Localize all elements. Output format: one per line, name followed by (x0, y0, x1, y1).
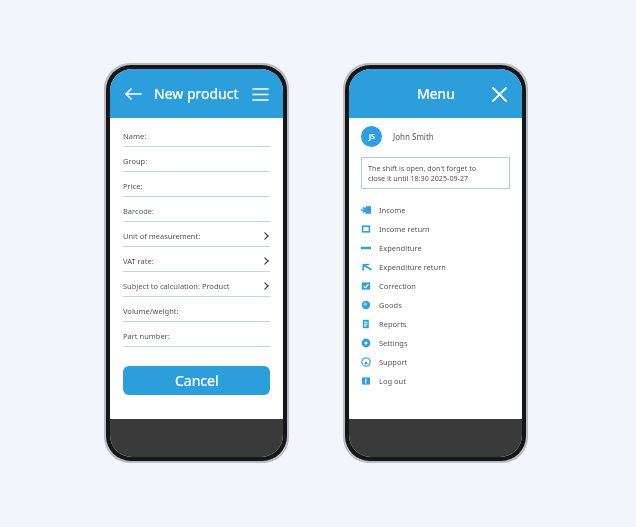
staticText: JS (369, 132, 375, 142)
button[interactable]: Reports (361, 314, 510, 333)
staticText: Menu (417, 84, 455, 103)
staticText: Income (379, 205, 406, 215)
staticText: Correction (379, 281, 416, 291)
button[interactable]: Back (122, 83, 144, 105)
staticText: Name: (123, 131, 270, 141)
staticText: Support (379, 357, 408, 367)
button[interactable]: Support (361, 352, 510, 371)
button[interactable]: Menu (249, 83, 271, 105)
button[interactable]: Expenditure return (361, 257, 510, 276)
button[interactable]: VAT rate: (123, 251, 270, 276)
button[interactable]: Close (488, 83, 510, 105)
staticText: Part number: (123, 331, 270, 341)
staticText: Log out (379, 376, 406, 386)
staticText: Price: (123, 181, 270, 191)
button[interactable]: Price: (123, 176, 270, 201)
button[interactable]: Volume/weight: (123, 301, 270, 326)
staticText: Volume/weight: (123, 306, 270, 316)
staticText: Expenditure return (379, 262, 446, 272)
button[interactable]: JS (361, 126, 510, 147)
staticText: Expenditure (379, 243, 422, 253)
button[interactable]: Part number: (123, 326, 270, 351)
button[interactable]: Correction (361, 276, 510, 295)
staticText: Goods (379, 300, 402, 310)
button[interactable]: Name: (123, 126, 270, 151)
button[interactable]: Cancel (123, 366, 270, 395)
staticText: Income return (379, 224, 430, 234)
staticText: Unit of measurement: (123, 231, 262, 241)
button[interactable]: Settings (361, 333, 510, 352)
staticText: Subject to calculation: Product (123, 281, 262, 291)
staticText: Reports (379, 319, 407, 329)
staticText: Settings (379, 338, 408, 348)
staticText: Barcode: (123, 206, 270, 216)
button[interactable]: Barcode: (123, 201, 270, 226)
button[interactable]: Log out (361, 371, 510, 390)
staticText: Group: (123, 156, 270, 166)
button[interactable]: Group: (123, 151, 270, 176)
staticText: VAT rate: (123, 256, 262, 266)
staticText: New product (154, 84, 239, 103)
button[interactable]: Goods (361, 295, 510, 314)
staticText: Cancel (175, 371, 219, 390)
button[interactable]: Subject to calculation: Product (123, 276, 270, 301)
button[interactable]: Income (361, 200, 510, 219)
staticText: The shift is open, don't forget to close… (368, 163, 477, 183)
button[interactable]: Expenditure (361, 238, 510, 257)
button[interactable]: Income return (361, 219, 510, 238)
staticText: John Smith (393, 131, 434, 142)
button[interactable]: Unit of measurement: (123, 226, 270, 251)
